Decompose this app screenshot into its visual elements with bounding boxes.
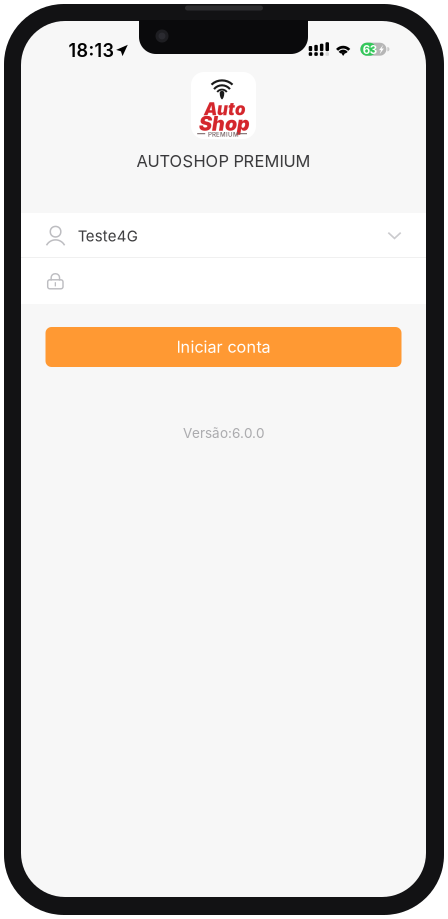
staticText: PREMIUM	[208, 131, 239, 138]
staticText: Versão:6.0.0	[183, 425, 264, 441]
staticText: AUTOSHOP PREMIUM	[136, 151, 310, 171]
button[interactable]: Account: Teste4G	[21, 213, 426, 257]
button[interactable]: Password	[21, 258, 426, 304]
staticText: 63	[363, 43, 377, 57]
staticText: Teste4G	[78, 227, 138, 245]
staticText: Shop	[199, 112, 250, 136]
staticText: 18:13	[68, 39, 113, 61]
staticText: Auto	[204, 99, 246, 119]
button[interactable]: Iniciar conta	[45, 327, 401, 367]
staticText: Iniciar conta	[176, 337, 270, 357]
